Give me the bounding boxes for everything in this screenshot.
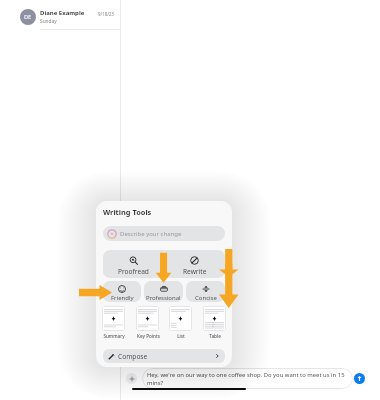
- button[interactable]: Key Points: [136, 306, 159, 342]
- button[interactable]: Send: [354, 373, 365, 384]
- button[interactable]: Rewrite: [164, 250, 225, 278]
- button[interactable]: Describe your change: [103, 226, 225, 241]
- staticText: Professional: [146, 294, 181, 302]
- staticText: Table: [209, 333, 221, 339]
- staticText: Summary: [103, 333, 125, 339]
- staticText: Proofread: [118, 267, 149, 276]
- staticText: 9/18/23: [98, 11, 114, 17]
- button[interactable]: Add attachment: [126, 373, 137, 384]
- button[interactable]: DE: [20, 9, 114, 25]
- staticText: List: [177, 333, 185, 339]
- button[interactable]: Concise: [186, 281, 225, 302]
- staticText: Diane Example: [40, 9, 85, 17]
- button[interactable]: Proofread: [103, 250, 164, 278]
- staticText: Friendly: [111, 294, 134, 302]
- staticText: DE: [24, 13, 32, 21]
- button[interactable]: Compose: [103, 349, 225, 363]
- button[interactable]: Summary: [102, 306, 125, 342]
- staticText: Hey, we're on our way to one coffee shop…: [147, 371, 349, 386]
- staticText: Writing Tools: [103, 207, 152, 217]
- staticText: Rewrite: [183, 267, 207, 276]
- staticText: Compose: [118, 352, 148, 361]
- button[interactable]: Hey, we're on our way to one coffee shop…: [147, 371, 349, 389]
- staticText: Concise: [195, 294, 217, 302]
- button[interactable]: Friendly: [103, 281, 141, 302]
- button[interactable]: List: [169, 306, 192, 342]
- staticText: Describe your change: [120, 230, 182, 238]
- button[interactable]: Professional: [144, 281, 183, 302]
- staticText: Key Points: [137, 333, 160, 339]
- button[interactable]: Table: [203, 306, 226, 342]
- staticText: Sunday: [40, 18, 57, 25]
